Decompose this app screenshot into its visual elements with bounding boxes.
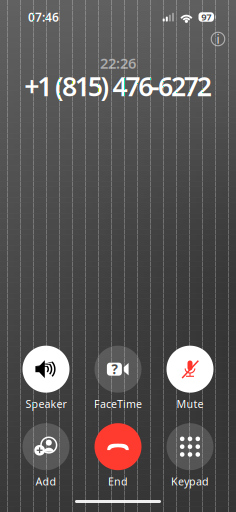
button[interactable]: Keypad: [154, 423, 225, 488]
button[interactable]: Call details: [205, 26, 231, 52]
staticText: FaceTime: [94, 397, 142, 411]
staticText: Keypad: [171, 474, 209, 488]
staticText: ?: [111, 360, 117, 378]
staticText: Add: [35, 474, 56, 488]
staticText: 22:26: [100, 53, 136, 73]
staticText: +1 (815) 476-6272: [24, 68, 212, 104]
button[interactable]: Mute: [154, 346, 225, 411]
staticText: i: [216, 31, 219, 47]
button[interactable]: End: [82, 423, 153, 488]
button[interactable]: Speaker: [10, 346, 81, 411]
button[interactable]: ?: [82, 346, 153, 411]
staticText: 97: [201, 11, 211, 23]
staticText: End: [108, 474, 128, 488]
staticText: 07:46: [28, 9, 59, 25]
button[interactable]: Add: [10, 423, 81, 488]
staticText: Mute: [176, 397, 203, 411]
staticText: Speaker: [25, 397, 66, 411]
